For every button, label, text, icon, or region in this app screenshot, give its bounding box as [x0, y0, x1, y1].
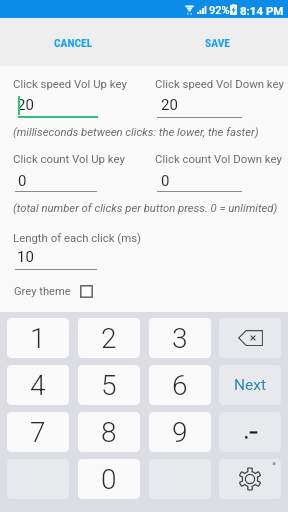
- button[interactable]: Grey theme: [13, 283, 94, 300]
- button[interactable]: 5: [78, 365, 140, 405]
- button[interactable]: Keyboard settings: [219, 459, 281, 499]
- button[interactable]: 2: [78, 318, 140, 358]
- button[interactable]: 8: [78, 412, 140, 452]
- staticText: 4: [30, 369, 46, 402]
- staticText: Click count Vol Up key: [13, 152, 125, 165]
- button[interactable]: 7: [7, 412, 69, 452]
- staticText: 0: [101, 463, 117, 496]
- button[interactable]: Backspace: [219, 318, 281, 358]
- staticText: 2: [101, 322, 117, 355]
- staticText: Click speed Vol Up key: [13, 77, 127, 90]
- staticText: Click speed Vol Down key: [155, 77, 284, 90]
- staticText: 9: [172, 416, 188, 449]
- staticText: CANCEL: [54, 36, 93, 49]
- staticText: 1: [30, 322, 46, 355]
- button[interactable]: SAVE: [197, 31, 238, 54]
- button[interactable]: 4: [7, 365, 69, 405]
- staticText: 0: [18, 172, 27, 190]
- staticText: 6: [172, 369, 188, 402]
- button[interactable]: 6: [149, 365, 211, 405]
- staticText: Click count Vol Down key: [155, 152, 282, 165]
- staticText: 5: [101, 369, 117, 402]
- staticText: (total number of clicks per button press…: [13, 202, 278, 215]
- button[interactable]: 0: [78, 459, 140, 499]
- staticText: 10: [17, 248, 34, 266]
- button[interactable]: 1: [7, 318, 69, 358]
- staticText: Length of each click (ms): [13, 231, 142, 244]
- button[interactable]: 9: [149, 412, 211, 452]
- staticText: Next: [234, 376, 267, 394]
- staticText: 8: [101, 416, 117, 449]
- staticText: SAVE: [205, 36, 230, 49]
- staticText: Grey theme: [14, 285, 71, 298]
- staticText: 3: [172, 322, 188, 355]
- staticText: 8:14 PM: [240, 4, 284, 17]
- staticText: 0: [161, 172, 170, 190]
- staticText: 92%: [209, 4, 230, 17]
- button[interactable]: Next: [219, 365, 281, 405]
- button[interactable]: 3: [149, 318, 211, 358]
- button[interactable]: Period and dash: [219, 412, 281, 452]
- staticText: 20: [17, 96, 34, 114]
- button[interactable]: CANCEL: [46, 31, 101, 54]
- staticText: 7: [30, 416, 46, 449]
- staticText: 20: [161, 96, 178, 114]
- staticText: (milliseconds between clicks: the lower,…: [13, 126, 259, 139]
